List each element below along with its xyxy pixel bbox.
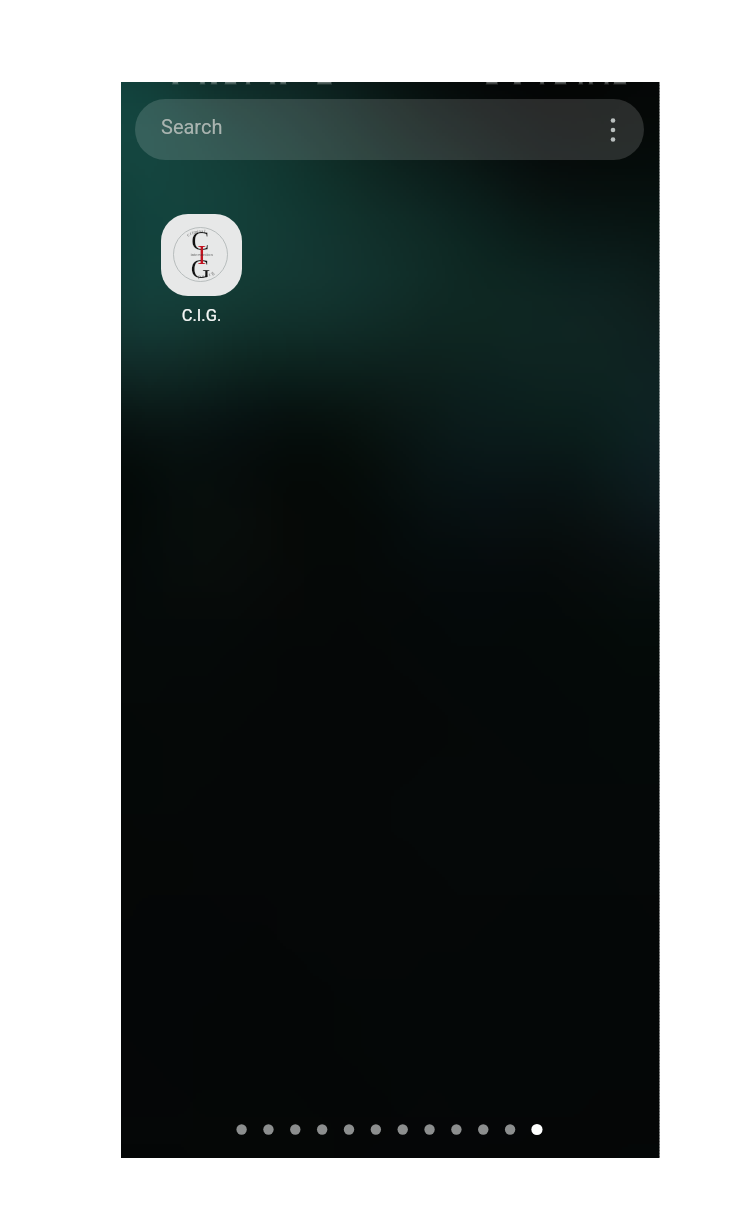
staticText: C.I.G.	[161, 306, 242, 330]
button[interactable]	[161, 214, 242, 296]
button[interactable]: Search	[135, 99, 644, 160]
staticText: Search	[161, 115, 281, 147]
button[interactable]: More options	[590, 107, 636, 153]
